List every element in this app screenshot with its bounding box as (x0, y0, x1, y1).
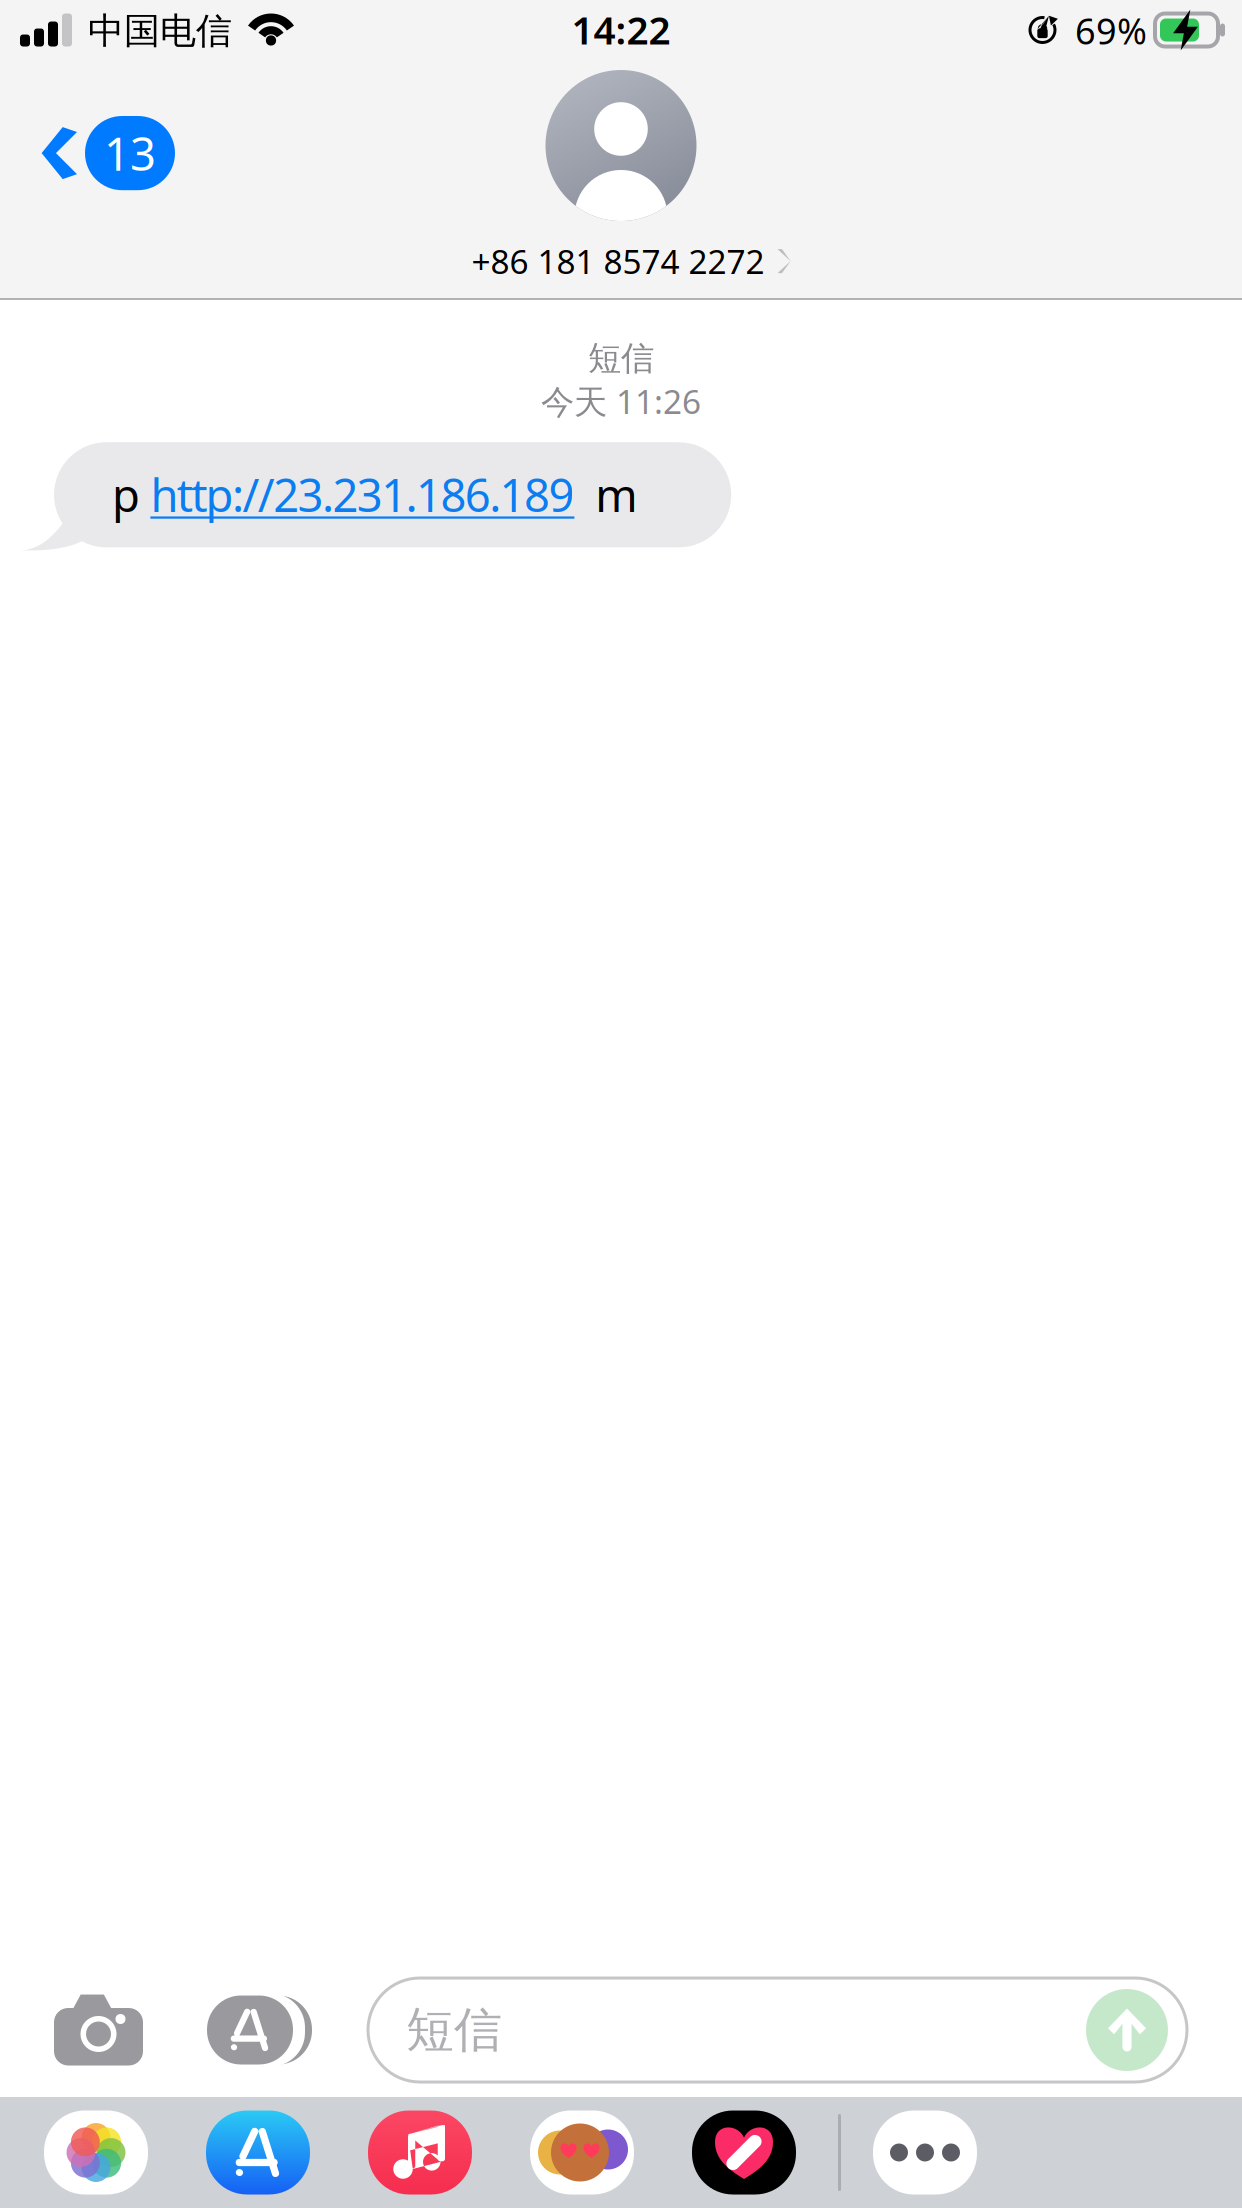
button[interactable]: Camera (54, 1994, 143, 2065)
staticText: 短信 (406, 2000, 502, 2059)
staticText: 中国电信 (88, 9, 232, 53)
button[interactable]: 短信 (368, 1978, 1187, 2082)
staticText: p (112, 464, 150, 524)
button[interactable]: App Store (207, 1993, 312, 2066)
button[interactable]: Music (368, 2110, 472, 2194)
button[interactable]: Photos (44, 2110, 148, 2194)
staticText: m (574, 464, 637, 524)
staticText: 13 (104, 123, 156, 183)
button[interactable]: App Store (206, 2110, 310, 2194)
staticText: 短信 (588, 338, 654, 379)
staticText: +86 181 8574 2272 (471, 239, 764, 283)
button[interactable]: More apps (873, 2110, 977, 2194)
staticText: 69% (1075, 7, 1147, 54)
button[interactable]: Fitness (692, 2110, 796, 2194)
staticText: http://23.231.186.189 (150, 464, 574, 524)
button[interactable]: Memoji (530, 2110, 634, 2194)
staticText: 14:22 (571, 4, 670, 55)
staticText: 今天 11:26 (541, 379, 701, 423)
button[interactable]: +86 181 8574 2272 (451, 70, 790, 283)
button[interactable]: Back to Messages (0, 102, 199, 204)
